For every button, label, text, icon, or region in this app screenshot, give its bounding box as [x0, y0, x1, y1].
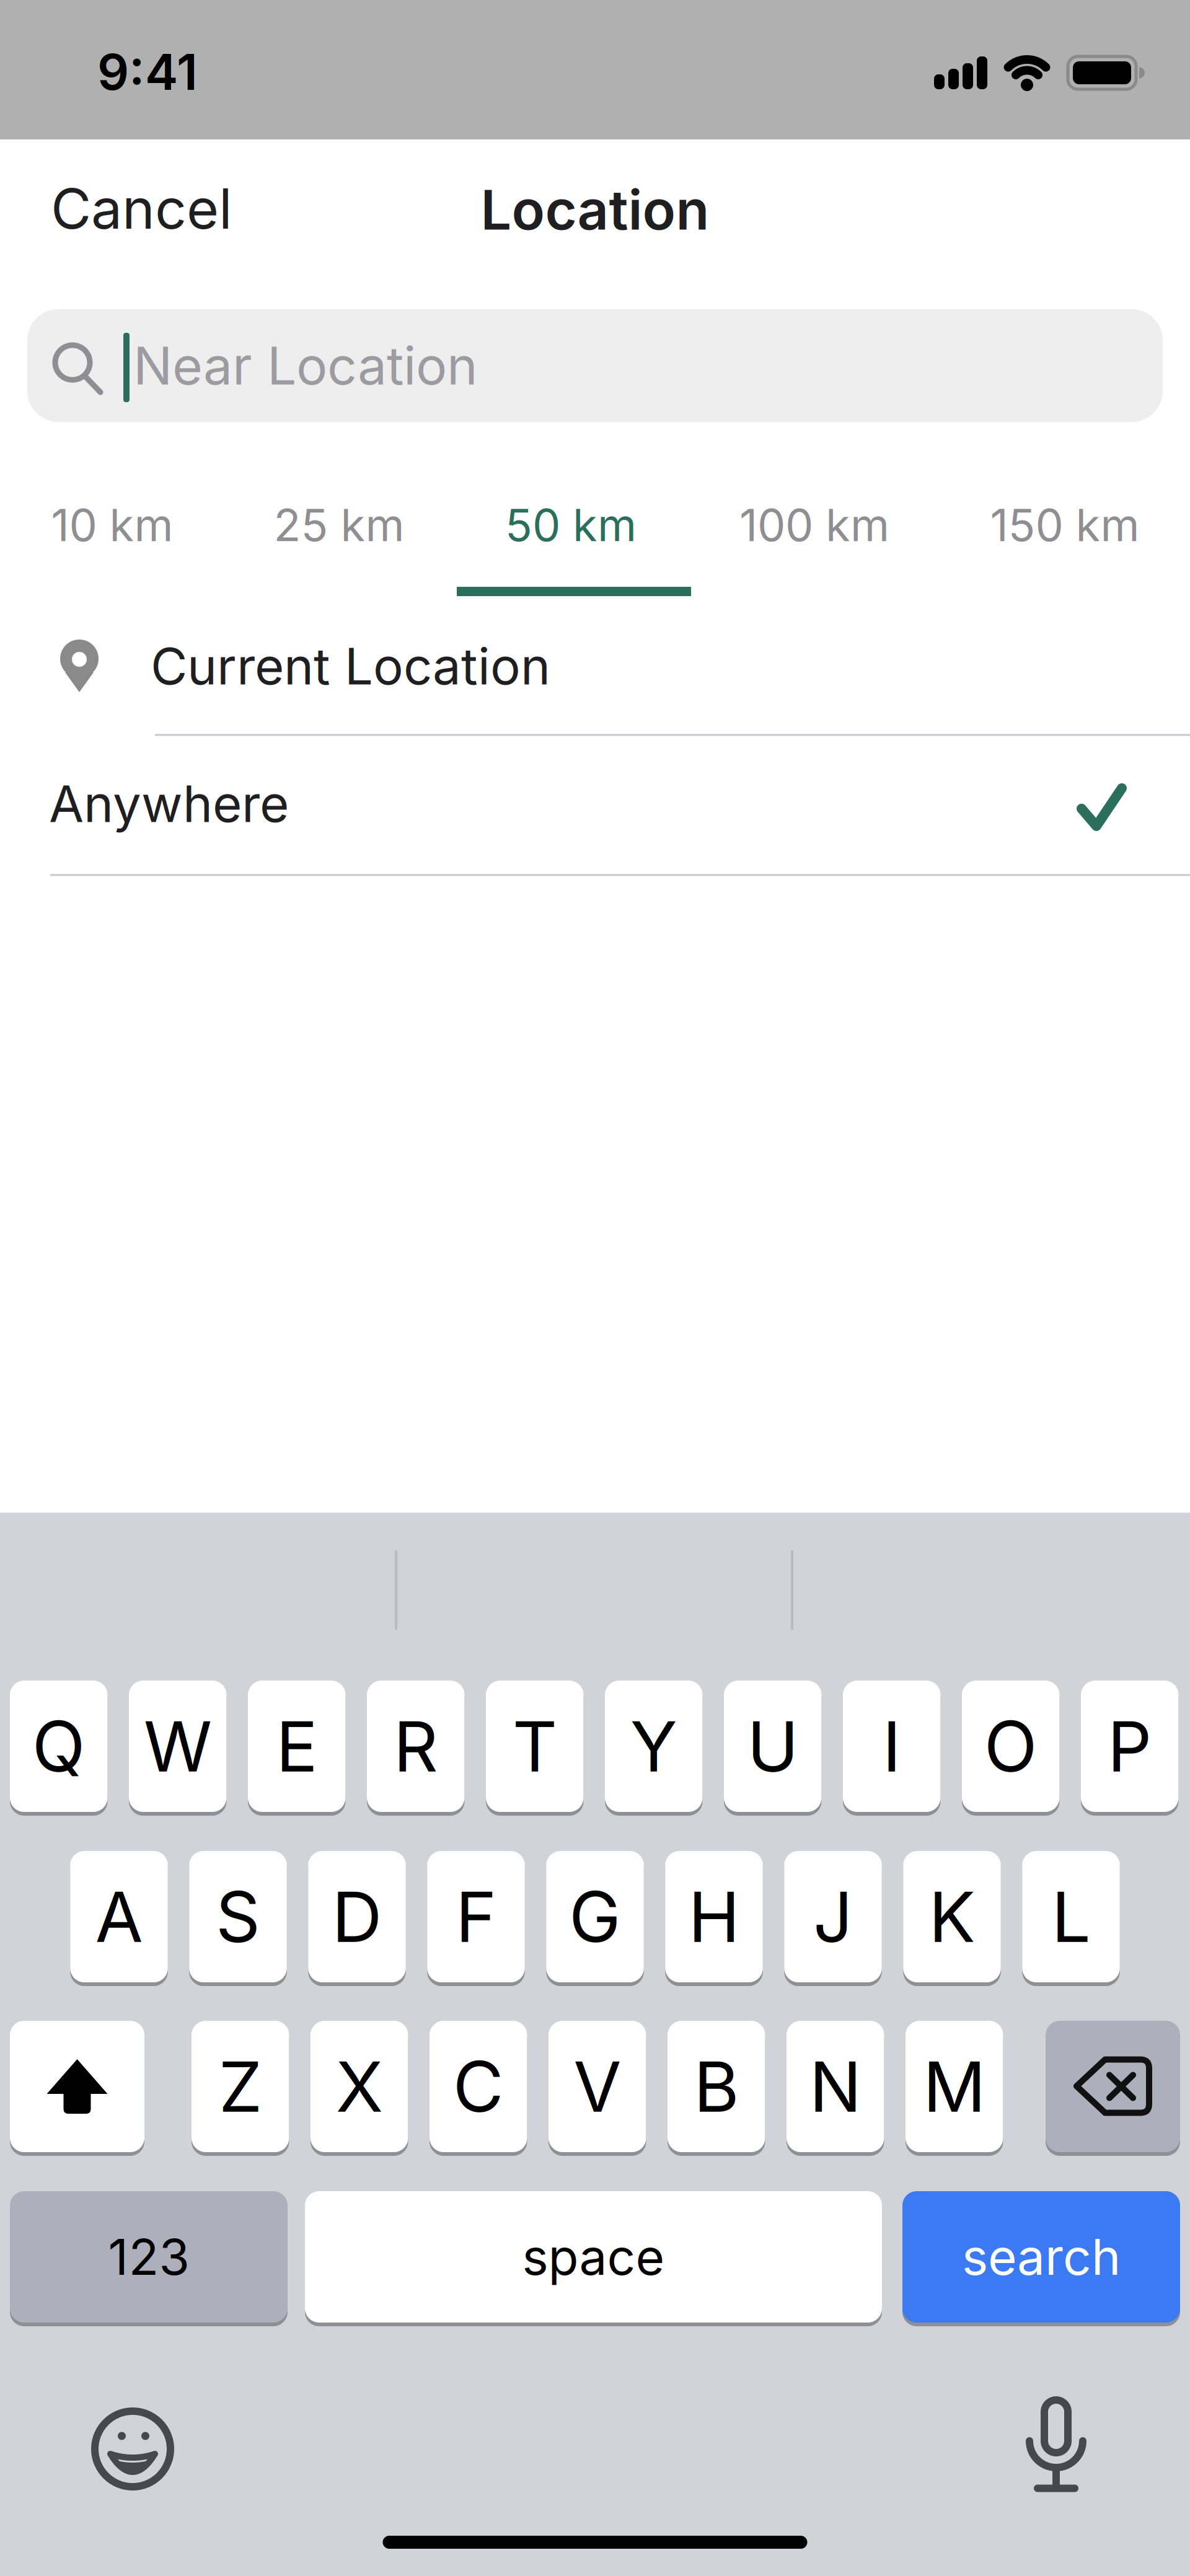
button[interactable]: T [486, 1681, 584, 1816]
staticText: O [984, 1705, 1037, 1787]
staticText: R [393, 1705, 438, 1787]
staticText: Q [32, 1705, 85, 1787]
staticText: 123 [108, 2228, 189, 2286]
button[interactable]: F [427, 1851, 525, 1986]
button[interactable]: E [248, 1681, 346, 1816]
staticText: Anywhere [49, 774, 289, 833]
staticText: Near Location [133, 335, 478, 396]
staticText: D [332, 1876, 382, 1958]
staticText: S [216, 1876, 260, 1958]
button[interactable]: J [784, 1851, 882, 1986]
staticText: W [144, 1705, 212, 1787]
button[interactable]: V [549, 2021, 646, 2156]
staticText: H [688, 1876, 740, 1958]
staticText: 25 km [274, 499, 404, 551]
staticText: 150 km [990, 499, 1139, 551]
staticText: space [522, 2228, 665, 2286]
staticText: J [813, 1876, 853, 1958]
staticText: Current Location [151, 636, 550, 696]
button[interactable]: C [430, 2021, 527, 2156]
staticText: V [573, 2045, 621, 2127]
button[interactable]: space [305, 2191, 882, 2326]
staticText: L [1051, 1876, 1091, 1958]
staticText: 9:41 [97, 43, 198, 101]
button[interactable]: D [308, 1851, 406, 1986]
staticText: N [809, 2045, 861, 2127]
button[interactable]: X [311, 2021, 408, 2156]
button[interactable]: Delete [1046, 2021, 1180, 2156]
button[interactable]: H [665, 1851, 763, 1986]
staticText: M [923, 2045, 986, 2127]
button[interactable]: Y [605, 1681, 703, 1816]
button[interactable]: N [787, 2021, 884, 2156]
staticText: Z [219, 2045, 262, 2127]
staticText: B [694, 2045, 739, 2127]
button[interactable]: L [1022, 1851, 1120, 1986]
button[interactable]: K [903, 1851, 1001, 1986]
button[interactable]: W [129, 1681, 227, 1816]
staticText: F [456, 1876, 496, 1958]
staticText: X [336, 2045, 383, 2127]
staticText: K [929, 1876, 975, 1958]
button[interactable]: S [189, 1851, 287, 1986]
staticText: E [276, 1705, 317, 1787]
button[interactable]: U [724, 1681, 822, 1816]
button[interactable]: Current Location [0, 597, 1190, 734]
button[interactable]: I [843, 1681, 941, 1816]
button[interactable]: O [962, 1681, 1060, 1816]
staticText: C [453, 2045, 504, 2127]
button[interactable]: Q [10, 1681, 108, 1816]
button[interactable]: R [367, 1681, 465, 1816]
button[interactable]: 150 km [990, 499, 1139, 551]
staticText: Cancel [51, 176, 232, 241]
staticText: 50 km [505, 499, 637, 551]
button[interactable]: Dictation [1026, 2399, 1101, 2499]
button[interactable]: 50 km [505, 499, 637, 551]
button[interactable]: 10 km [51, 499, 173, 551]
staticText: I [882, 1705, 901, 1787]
button[interactable]: P [1081, 1681, 1179, 1816]
button[interactable]: Cancel [51, 176, 232, 241]
button[interactable]: Anywhere [0, 736, 1190, 874]
button[interactable]: 25 km [274, 499, 404, 551]
button[interactable]: 100 km [739, 499, 889, 551]
staticText: P [1107, 1705, 1152, 1787]
staticText: 10 km [51, 499, 173, 551]
button[interactable]: M [906, 2021, 1003, 2156]
staticText: 100 km [739, 499, 889, 551]
staticText: Y [630, 1705, 677, 1787]
staticText: G [569, 1876, 621, 1958]
button[interactable]: A [70, 1851, 168, 1986]
button[interactable]: Emoji [83, 2399, 182, 2499]
button[interactable]: Z [192, 2021, 289, 2156]
staticText: search [962, 2228, 1121, 2286]
button[interactable]: 123 [10, 2191, 288, 2326]
button[interactable]: G [546, 1851, 644, 1986]
button[interactable]: B [668, 2021, 765, 2156]
staticText: A [95, 1876, 143, 1958]
button[interactable]: Shift [10, 2021, 144, 2156]
button[interactable]: search [902, 2191, 1180, 2326]
staticText: Location [481, 178, 709, 242]
staticText: U [747, 1705, 798, 1787]
staticText: T [512, 1705, 557, 1787]
